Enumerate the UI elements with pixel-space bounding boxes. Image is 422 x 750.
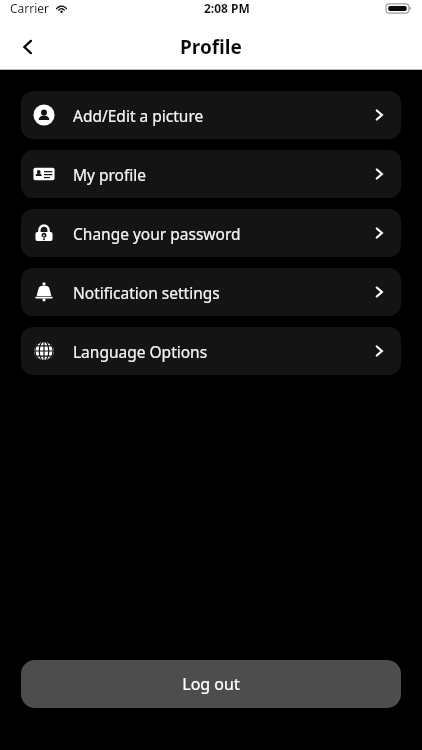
staticText: Add/Edit a picture	[73, 105, 204, 126]
staticText: Language Options	[73, 341, 208, 362]
staticText: Profile	[180, 34, 242, 60]
staticText: Change your password	[73, 223, 241, 244]
button[interactable]: Log out	[21, 660, 401, 708]
button[interactable]: Add/Edit a picture	[21, 91, 401, 139]
button[interactable]: Change your password	[21, 209, 401, 257]
button[interactable]: Language Options	[21, 327, 401, 375]
button[interactable]: My profile	[21, 150, 401, 198]
staticText: Notification settings	[73, 282, 220, 303]
staticText: Carrier	[10, 0, 50, 16]
button[interactable]: Back	[8, 27, 48, 67]
staticText: 2:08 PM	[204, 0, 250, 16]
staticText: Log out	[182, 673, 240, 695]
staticText: My profile	[73, 164, 147, 185]
button[interactable]: Notification settings	[21, 268, 401, 316]
